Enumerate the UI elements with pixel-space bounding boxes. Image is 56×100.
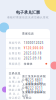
staticText: 转让标记	[9, 96, 21, 100]
staticText: 待签收	[24, 62, 33, 65]
staticText: 票据号码	[9, 41, 21, 45]
staticText: 交易信息	[9, 72, 21, 75]
staticText: 某某银行股份有限公司	[22, 91, 46, 97]
staticText: 到期日期	[9, 57, 21, 60]
staticText: 出票人账号	[9, 80, 24, 84]
staticText: 票据金额	[9, 46, 21, 50]
staticText: 1300012025	[24, 41, 44, 45]
staticText: 浙江某某科技有限公司	[22, 75, 46, 81]
staticText: 请核对票据信息无误后确认签收	[7, 16, 49, 19]
staticText: 电子承兑汇票	[16, 10, 40, 15]
staticText: 上海某某国际贸易公司	[22, 83, 46, 89]
staticText: 收 款 人	[9, 84, 20, 88]
staticText: 可转让	[23, 96, 32, 100]
staticText: 6222 0211 9876 5432	[26, 86, 43, 93]
staticText: 票据信息	[22, 32, 34, 35]
staticText: 2025-09-18	[24, 57, 42, 60]
staticText: 出 票 人	[9, 76, 20, 80]
staticText: 2025-03-18	[24, 52, 42, 55]
staticText: 6225 8801 2345 6789	[26, 78, 43, 85]
staticText: 承 兑 人	[9, 92, 20, 96]
staticText: 票据状态	[9, 62, 21, 65]
staticText: 出票日期	[9, 52, 21, 55]
staticText: 收款人账号	[9, 88, 24, 92]
staticText: ¥120,000.00	[24, 46, 44, 50]
